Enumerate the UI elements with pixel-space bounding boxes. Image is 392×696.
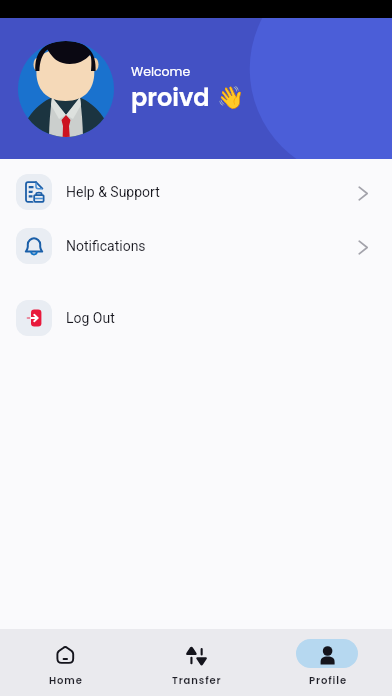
staticText: Welcome <box>131 63 191 80</box>
button[interactable]: Help & Support <box>0 165 392 219</box>
staticText: proivd <box>131 81 210 115</box>
other: Profile <box>320 646 335 665</box>
staticText: Transfer <box>172 673 222 687</box>
other: Home <box>56 646 75 665</box>
other: Transfer <box>186 646 207 666</box>
staticText: Notifications <box>66 238 146 254</box>
staticText: Home <box>49 673 83 687</box>
staticText: Profile <box>309 673 347 687</box>
staticText: Help & Support <box>66 184 160 200</box>
button[interactable]: Transfer <box>130 633 261 693</box>
button[interactable]: Notifications <box>0 219 392 273</box>
staticText: Log Out <box>66 310 115 326</box>
staticText: 👋 <box>217 85 245 111</box>
button[interactable]: Home <box>0 633 130 693</box>
button[interactable]: Log Out <box>0 291 392 345</box>
button[interactable]: Profile <box>261 633 392 693</box>
